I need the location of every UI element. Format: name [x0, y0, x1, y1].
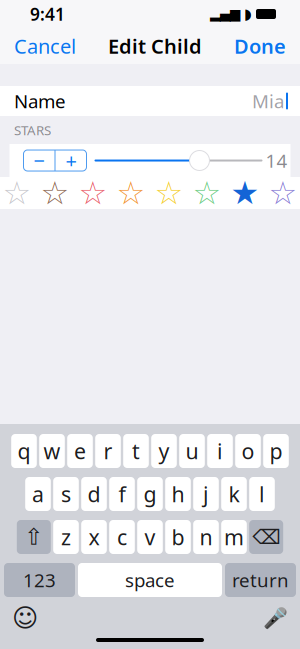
- button[interactable]: l: [249, 477, 275, 511]
- button[interactable]: q: [11, 434, 37, 468]
- button[interactable]: Increment: [55, 150, 86, 171]
- staticText: h: [171, 480, 184, 508]
- button[interactable]: j: [193, 477, 219, 511]
- button[interactable]: x: [81, 520, 107, 554]
- button[interactable]: i: [207, 434, 233, 468]
- staticText: ☆: [268, 175, 297, 211]
- staticText: ★: [230, 175, 259, 211]
- button[interactable]: Star 4: [116, 180, 146, 206]
- staticText: l: [259, 480, 265, 508]
- button[interactable]: Shift: [17, 520, 51, 554]
- staticText: c: [117, 523, 127, 551]
- staticText: Mia: [252, 89, 284, 113]
- staticText: t: [132, 437, 140, 465]
- staticText: ☆: [78, 175, 107, 211]
- staticText: ☆: [116, 175, 145, 211]
- staticText: f: [118, 480, 125, 508]
- button[interactable]: return: [225, 563, 296, 597]
- staticText: −: [33, 147, 44, 174]
- staticText: d: [87, 480, 100, 508]
- staticText: g: [143, 480, 156, 508]
- button[interactable]: g: [137, 477, 163, 511]
- button[interactable]: u: [179, 434, 205, 468]
- button[interactable]: space: [78, 563, 222, 597]
- staticText: b: [171, 523, 184, 551]
- staticText: Name: [14, 89, 66, 113]
- button[interactable]: s: [53, 477, 79, 511]
- button[interactable]: Name: [0, 86, 300, 116]
- button[interactable]: Star 1: [2, 180, 32, 206]
- staticText: w: [43, 437, 60, 465]
- button[interactable]: Delete: [249, 520, 283, 554]
- staticText: ☆: [2, 175, 31, 211]
- staticText: k: [228, 480, 239, 508]
- staticText: ☆: [154, 175, 183, 211]
- staticText: STARS: [14, 121, 51, 139]
- button[interactable]: 123: [4, 563, 75, 597]
- staticText: v: [144, 523, 155, 551]
- staticText: space: [125, 568, 175, 592]
- staticText: e: [74, 437, 86, 465]
- button[interactable]: h: [165, 477, 191, 511]
- staticText: z: [61, 523, 71, 551]
- staticText: r: [103, 437, 112, 465]
- staticText: return: [232, 568, 289, 592]
- button[interactable]: c: [109, 520, 135, 554]
- staticText: a: [32, 480, 44, 508]
- staticText: y: [158, 437, 169, 465]
- button[interactable]: a: [25, 477, 51, 511]
- button[interactable]: Star 3: [78, 180, 108, 206]
- staticText: i: [217, 437, 223, 465]
- staticText: q: [17, 437, 30, 465]
- button[interactable]: Star 8: [268, 180, 298, 206]
- staticText: 🎤: [262, 607, 287, 629]
- staticText: Done: [234, 33, 286, 59]
- button[interactable]: t: [123, 434, 149, 468]
- button[interactable]: Emoji: [0, 603, 42, 633]
- staticText: o: [241, 437, 254, 465]
- button[interactable]: z: [53, 520, 79, 554]
- staticText: +: [65, 147, 76, 174]
- staticText: ⇧: [24, 524, 43, 550]
- button[interactable]: Star 7: [230, 180, 260, 206]
- staticText: 9:41: [30, 2, 65, 25]
- staticText: j: [203, 480, 209, 508]
- button[interactable]: Star 5: [154, 180, 184, 206]
- staticText: ▂▄▆: [210, 6, 240, 21]
- button[interactable]: Decrement: [23, 150, 54, 171]
- button[interactable]: o: [235, 434, 261, 468]
- button[interactable]: Cancel: [0, 28, 76, 64]
- staticText: Edit Child: [108, 33, 202, 59]
- staticText: ☆: [192, 175, 221, 211]
- staticText: x: [88, 523, 99, 551]
- button[interactable]: n: [193, 520, 219, 554]
- button[interactable]: e: [67, 434, 93, 468]
- button[interactable]: b: [165, 520, 191, 554]
- button[interactable]: Dictation: [258, 603, 300, 633]
- staticText: 14: [265, 148, 287, 173]
- staticText: p: [269, 437, 282, 465]
- staticText: u: [185, 437, 198, 465]
- button[interactable]: w: [39, 434, 65, 468]
- button[interactable]: Star 2: [40, 180, 70, 206]
- staticText: ◗: [244, 6, 252, 22]
- staticText: ☺: [12, 604, 38, 632]
- button[interactable]: m: [221, 520, 247, 554]
- staticText: m: [224, 523, 244, 551]
- button[interactable]: y: [151, 434, 177, 468]
- staticText: n: [199, 523, 212, 551]
- staticText: s: [61, 480, 71, 508]
- button[interactable]: r: [95, 434, 121, 468]
- button[interactable]: d: [81, 477, 107, 511]
- button[interactable]: Star 6: [192, 180, 222, 206]
- staticText: 123: [23, 568, 56, 592]
- staticText: ☆: [40, 175, 69, 211]
- button[interactable]: Done: [234, 28, 300, 64]
- button[interactable]: p: [263, 434, 289, 468]
- button[interactable]: f: [109, 477, 135, 511]
- button[interactable]: k: [221, 477, 247, 511]
- staticText: Cancel: [14, 33, 76, 59]
- button[interactable]: v: [137, 520, 163, 554]
- staticText: ⌫: [252, 526, 280, 548]
